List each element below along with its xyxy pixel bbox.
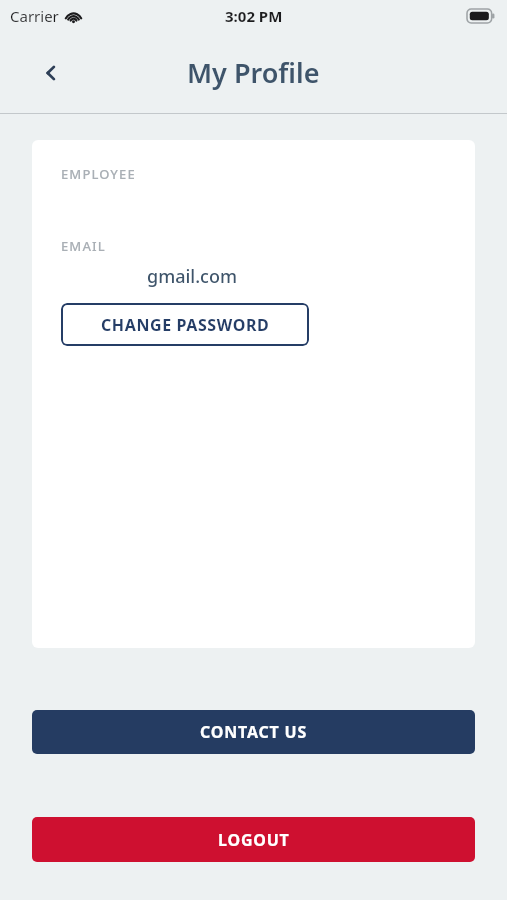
staticText: My Profile (187, 54, 320, 91)
button[interactable]: CHANGE PASSWORD (61, 303, 309, 346)
staticText: 3:02 PM (225, 6, 283, 26)
staticText: EMPLOYEE (61, 165, 136, 183)
button[interactable]: Back (28, 49, 76, 97)
staticText: LOGOUT (218, 829, 290, 851)
button[interactable]: LOGOUT (32, 817, 475, 862)
staticText: CONTACT US (200, 721, 308, 743)
staticText: EMAIL (61, 237, 106, 255)
button[interactable]: CONTACT US (32, 710, 475, 754)
staticText: CHANGE PASSWORD (101, 314, 270, 336)
staticText: gmail.com (147, 264, 237, 289)
staticText: Carrier (10, 6, 59, 26)
